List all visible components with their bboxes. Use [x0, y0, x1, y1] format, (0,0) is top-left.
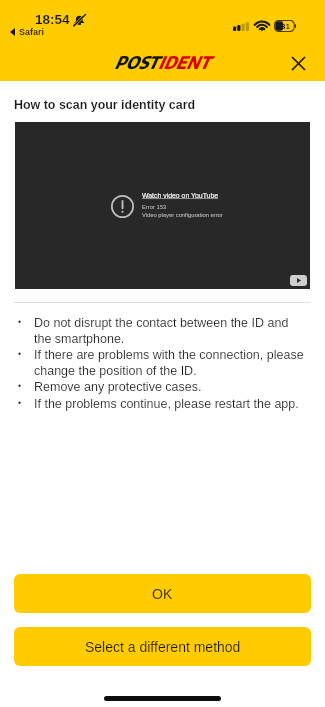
staticText: If there are problems with the connectio…	[34, 348, 307, 377]
button[interactable]: OK	[14, 574, 311, 613]
staticText: Watch video on YouTube	[142, 192, 219, 200]
staticText: •	[18, 381, 34, 391]
staticText: 31	[281, 22, 290, 31]
staticText: Do not disrupt the contact between the I…	[34, 316, 307, 345]
staticText: 18:54	[35, 12, 70, 27]
staticText: If the problems continue, please restart…	[34, 397, 299, 411]
staticText: Remove any protective cases.	[34, 380, 202, 394]
staticText: OK	[152, 586, 173, 602]
button[interactable]: Play on YouTube	[290, 275, 307, 286]
staticText: •	[18, 317, 34, 327]
button[interactable]: Back to Safari	[10, 27, 45, 37]
staticText: Safari	[19, 27, 45, 37]
staticText: POSTIDENT	[114, 51, 210, 73]
button[interactable]: Watch video on YouTube	[142, 192, 219, 200]
staticText: Select a different method	[85, 639, 241, 655]
staticText: Error 153	[142, 204, 167, 210]
staticText: Video player configuration error	[142, 212, 223, 218]
button[interactable]: Select a different method	[14, 627, 311, 666]
staticText: How to scan your identity card	[14, 98, 196, 112]
staticText: •	[18, 349, 34, 359]
staticText: •	[18, 398, 34, 408]
button[interactable]: Close	[285, 50, 311, 76]
